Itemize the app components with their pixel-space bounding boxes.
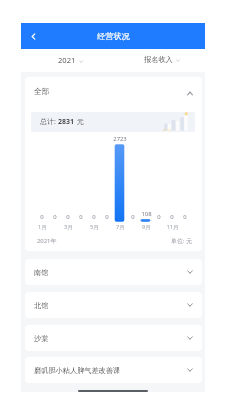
staticText: 108 bbox=[141, 210, 152, 218]
button[interactable]: 南馆 bbox=[25, 259, 202, 285]
button[interactable]: 磨叽胆小粘人脾气差改善课 bbox=[25, 357, 202, 383]
staticText: 报名收入 bbox=[144, 55, 173, 64]
staticText: 0 bbox=[53, 213, 57, 221]
staticText: 全部 bbox=[34, 87, 50, 97]
staticText: 北馆 bbox=[34, 301, 49, 310]
staticText: 磨叽胆小粘人脾气差改善课 bbox=[34, 366, 121, 375]
staticText: 0 bbox=[105, 213, 109, 221]
staticText: 元 bbox=[75, 117, 84, 127]
staticText: 0 bbox=[92, 213, 96, 221]
button[interactable]: Back bbox=[23, 26, 43, 46]
button[interactable]: 全部 bbox=[25, 77, 202, 107]
button[interactable]: 沙棠 bbox=[25, 325, 202, 351]
staticText: 2723 bbox=[113, 135, 127, 143]
staticText: 0 bbox=[170, 213, 174, 221]
staticText: 2021 bbox=[58, 55, 76, 65]
staticText: 0 bbox=[79, 213, 83, 221]
staticText: 0 bbox=[40, 213, 44, 221]
staticText: 7月 bbox=[116, 223, 125, 231]
staticText: 沙棠 bbox=[34, 334, 49, 343]
staticText: 2831 bbox=[58, 117, 75, 127]
staticText: 0 bbox=[157, 213, 161, 221]
staticText: 0 bbox=[66, 213, 70, 221]
staticText: 经营状况 bbox=[97, 31, 130, 41]
staticText: 0 bbox=[183, 213, 187, 221]
staticText: 1月 bbox=[38, 223, 47, 231]
button[interactable]: 北馆 bbox=[25, 292, 202, 318]
staticText: 南馆 bbox=[34, 268, 49, 277]
staticText: 单位: 元 bbox=[171, 237, 192, 245]
button[interactable]: 2021 bbox=[44, 49, 96, 72]
staticText: 5月 bbox=[90, 223, 99, 231]
staticText: 0 bbox=[131, 213, 135, 221]
staticText: 总计: bbox=[40, 117, 58, 127]
staticText: 9月 bbox=[142, 223, 151, 231]
button[interactable]: 报名收入 bbox=[136, 49, 188, 72]
staticText: 3月 bbox=[64, 223, 73, 231]
staticText: 2021年 bbox=[37, 237, 57, 245]
staticText: 11月 bbox=[166, 223, 179, 231]
